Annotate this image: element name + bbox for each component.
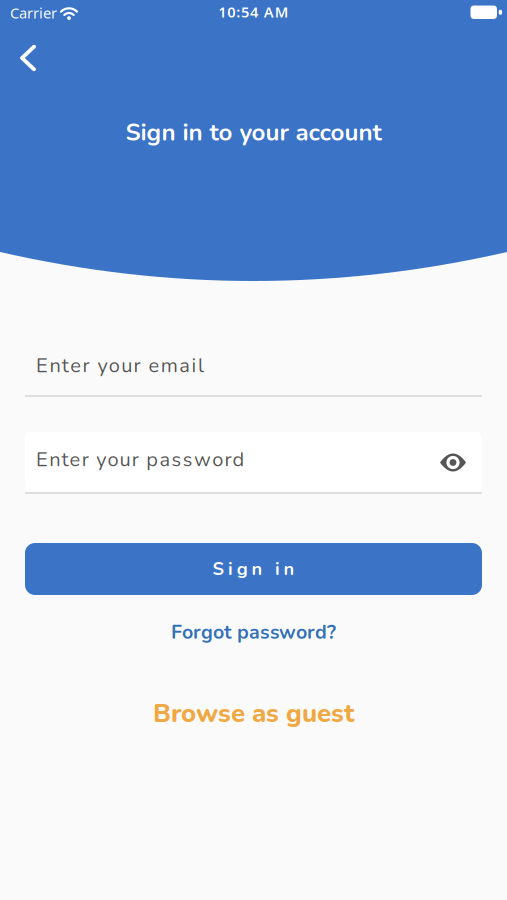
staticText: n (49, 352, 60, 379)
staticText: w (194, 446, 211, 473)
staticText: d (233, 446, 245, 473)
staticText: S (212, 556, 224, 581)
staticText: a (179, 352, 190, 379)
staticText: y (96, 446, 106, 473)
staticText: 5 (241, 2, 249, 21)
staticText: e (70, 446, 81, 473)
staticText: t (62, 352, 69, 379)
staticText: r (82, 446, 89, 473)
staticText: 0 (227, 2, 235, 21)
staticText: s (183, 446, 193, 473)
button[interactable]: Forgot password? (171, 619, 336, 646)
staticText: u (121, 352, 132, 379)
staticText: i (275, 556, 280, 581)
staticText: n (49, 446, 60, 473)
staticText: 1 (218, 2, 226, 21)
staticText: i (228, 556, 233, 581)
staticText: r (83, 352, 90, 379)
staticText: o (107, 446, 118, 473)
staticText: : (236, 2, 240, 21)
staticText: y (97, 352, 107, 379)
staticText: E (36, 446, 48, 473)
button[interactable]: Show password (440, 453, 466, 472)
button[interactable]: S (25, 543, 482, 595)
staticText: A (264, 2, 274, 21)
staticText: Carrier (10, 3, 57, 22)
staticText: t (61, 446, 68, 473)
staticText: u (120, 446, 131, 473)
staticText: a (159, 446, 170, 473)
button[interactable]: Browse as guest (153, 696, 354, 731)
staticText: o (212, 446, 223, 473)
staticText: o (109, 352, 120, 379)
staticText: E (36, 352, 48, 379)
staticText: i (192, 352, 197, 379)
staticText: Sign in to your account (125, 116, 381, 149)
staticText: n (284, 556, 295, 581)
staticText: 4 (250, 2, 258, 21)
staticText: s (172, 446, 182, 473)
staticText: Browse as guest (153, 696, 354, 731)
staticText: p (146, 446, 158, 473)
staticText: e (148, 352, 159, 379)
staticText: r (224, 446, 231, 473)
staticText: l (198, 352, 204, 379)
staticText: e (70, 352, 81, 379)
staticText: Forgot password? (171, 619, 336, 646)
staticText: g (237, 556, 248, 581)
staticText: n (251, 556, 262, 581)
staticText: M (275, 2, 289, 21)
staticText: m (161, 352, 178, 379)
staticText: r (132, 446, 139, 473)
staticText: r (134, 352, 141, 379)
button[interactable]: Back (20, 45, 36, 71)
